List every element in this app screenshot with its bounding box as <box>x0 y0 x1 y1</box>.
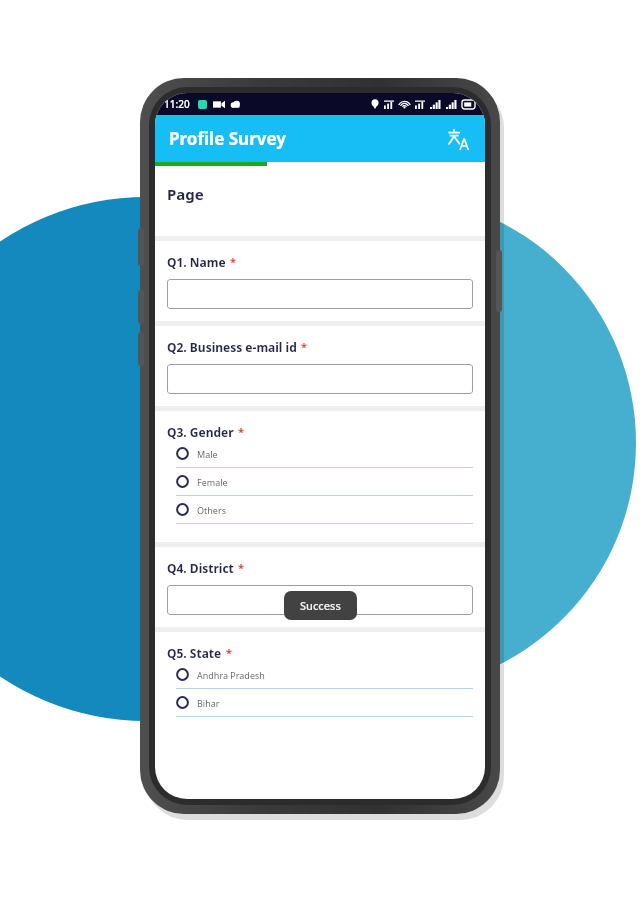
staticText: Q5. State <box>167 645 222 661</box>
staticText: Others <box>197 504 226 516</box>
staticText: Bihar <box>197 697 220 709</box>
staticText: Q3. Gender <box>167 424 234 440</box>
button[interactable]: Translate <box>441 122 475 156</box>
staticText: * <box>301 339 307 354</box>
staticText: Andhra Pradesh <box>197 669 265 681</box>
staticText: * <box>238 560 244 575</box>
button[interactable] <box>167 279 473 309</box>
staticText: Page <box>167 184 204 204</box>
staticText: Q4. District <box>167 560 234 576</box>
staticText: Profile Survey <box>169 127 286 150</box>
staticText: Success <box>300 598 341 613</box>
button[interactable] <box>167 585 473 615</box>
staticText: * <box>238 424 244 439</box>
button[interactable]: Bihar <box>176 689 473 717</box>
button[interactable]: Andhra Pradesh <box>176 661 473 689</box>
staticText: * <box>226 645 232 660</box>
staticText: Q2. Business e-mail id <box>167 339 297 355</box>
staticText: 11:20 <box>164 97 190 111</box>
staticText: Male <box>197 448 218 460</box>
staticText: * <box>230 254 236 269</box>
button[interactable]: Female <box>176 468 473 496</box>
staticText: Female <box>197 476 228 488</box>
staticText: Q1. Name <box>167 254 226 270</box>
button[interactable]: Others <box>176 496 473 524</box>
button[interactable] <box>167 364 473 394</box>
button[interactable]: Male <box>176 440 473 468</box>
